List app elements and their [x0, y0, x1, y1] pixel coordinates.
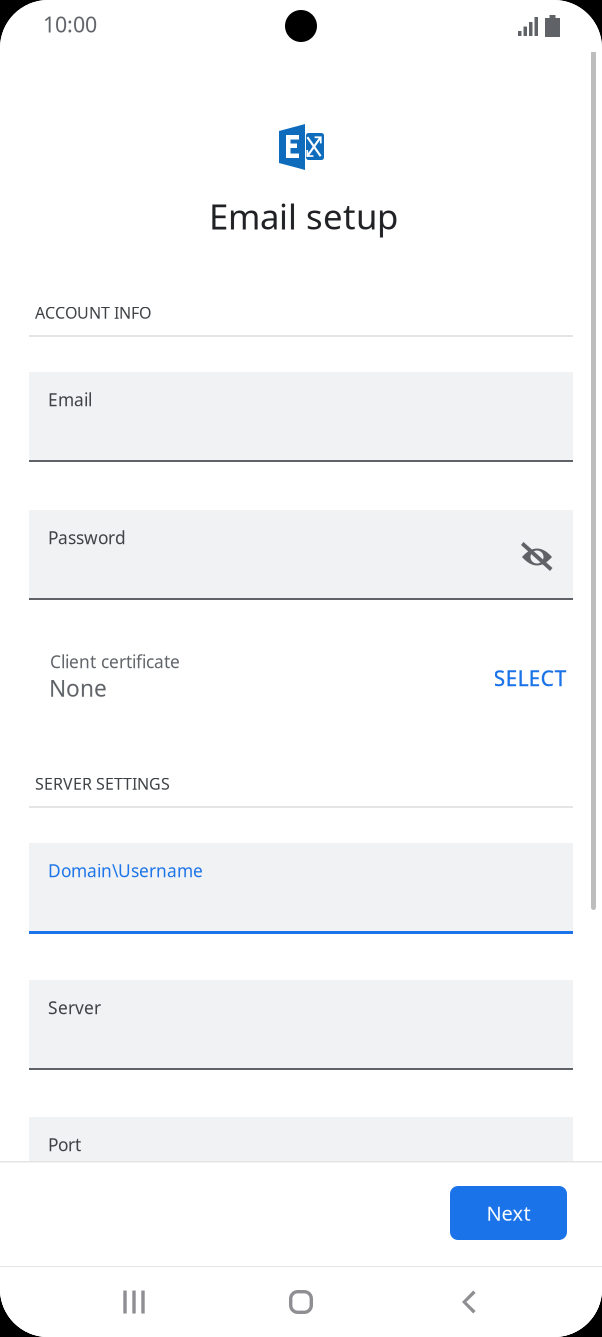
button[interactable]: Home	[263, 1274, 339, 1330]
button[interactable]: Back	[431, 1274, 507, 1330]
button[interactable]: Server	[29, 980, 573, 1071]
staticText: 10:00	[43, 10, 97, 38]
button[interactable]: SELECT	[474, 654, 586, 702]
staticText: Next	[486, 1200, 530, 1226]
button[interactable]: Next	[450, 1186, 567, 1240]
button[interactable]: Password	[29, 510, 573, 601]
button[interactable]: Domain\Username	[29, 843, 573, 934]
staticText: Email	[48, 388, 92, 411]
staticText: Domain\Username	[48, 859, 203, 882]
button[interactable]: Email	[29, 372, 573, 463]
staticText: Port	[48, 1133, 81, 1156]
staticText: None	[49, 673, 107, 703]
staticText: SELECT	[493, 664, 566, 692]
staticText: Email setup	[209, 193, 398, 239]
staticText: Password	[48, 526, 126, 549]
button[interactable]: Port	[29, 1117, 573, 1208]
staticText: Server	[48, 996, 101, 1019]
staticText: ACCOUNT INFO	[35, 302, 151, 323]
button[interactable]: Recents	[96, 1274, 172, 1330]
staticText: SERVER SETTINGS	[35, 773, 170, 794]
staticText: Client certificate	[50, 650, 180, 673]
